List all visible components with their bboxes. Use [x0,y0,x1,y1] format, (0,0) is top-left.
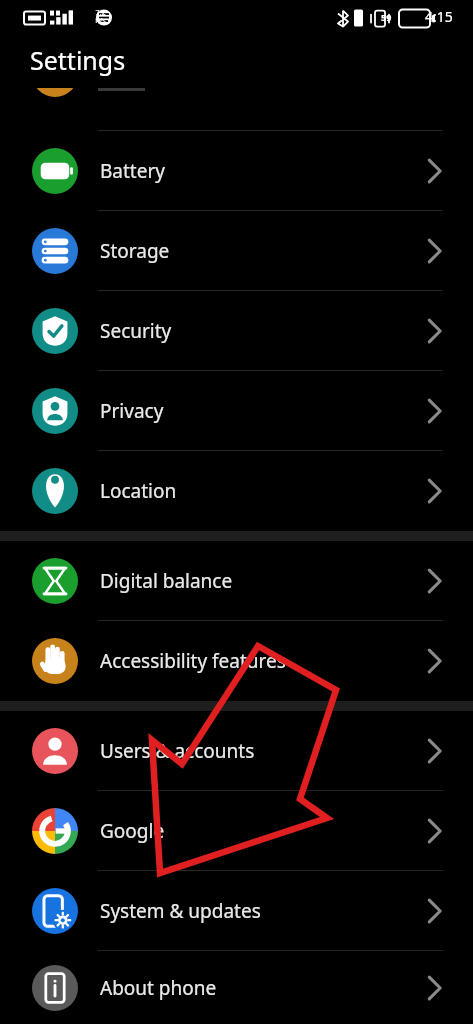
staticText: 4:15 [425,7,453,26]
staticText: Privacy [100,398,164,424]
button[interactable]: System & updates [0,871,473,951]
staticText: Google [100,818,165,844]
staticText: Battery [100,158,165,184]
staticText: About phone [100,975,217,1001]
staticText: 7.2 K/s [95,8,106,25]
staticText: Storage [100,238,170,264]
staticText: Security [100,318,172,344]
staticText: Users & accounts [100,738,255,764]
staticText: 59 [381,11,392,23]
staticText: Digital balance [100,568,233,594]
button[interactable]: Google [0,791,473,871]
button[interactable]: Storage [0,211,473,291]
staticText: Location [100,478,177,504]
button[interactable]: Privacy [0,371,473,451]
staticText: Settings [30,43,126,77]
button[interactable]: Digital balance [0,541,473,621]
button[interactable]: Users & accounts [0,711,473,791]
button[interactable]: Security [0,291,473,371]
staticText: Accessibility features [100,648,286,674]
button[interactable]: About phone [0,951,473,1024]
button[interactable]: Location [0,451,473,531]
button[interactable]: Battery [0,131,473,211]
button[interactable]: Accessibility features [0,621,473,701]
staticText: System & updates [100,898,261,924]
